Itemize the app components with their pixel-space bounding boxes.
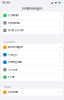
button[interactable]: Hintergrund [1, 59, 63, 66]
staticText: ALLGEMEIN [4, 41, 16, 44]
staticText: Anzeige [8, 53, 17, 56]
staticText: Sprache [8, 68, 17, 71]
button[interactable]: Mitteilungen [1, 44, 63, 51]
button[interactable]: Sicherheit [1, 12, 63, 19]
staticText: SYSTEM [4, 86, 11, 89]
staticText: Nicht Stören [8, 29, 23, 32]
staticText: Einstellungen [21, 7, 42, 10]
staticText: Hintergrund [8, 61, 22, 64]
button[interactable]: Töne [1, 74, 63, 81]
button[interactable]: Nicht Stören [1, 27, 63, 34]
staticText: Töne [8, 76, 14, 79]
staticText: Mitteilungen [8, 46, 22, 49]
staticText: Sicherheit [8, 14, 19, 17]
button[interactable]: Anzeige [1, 51, 63, 58]
button[interactable]: Datenschutz [1, 19, 63, 26]
staticText: 10:09 [2, 1, 10, 4]
staticText: Speicher [8, 91, 18, 94]
staticText: Datenschutz [8, 21, 20, 24]
button[interactable]: Speicher [1, 89, 63, 96]
button[interactable]: Sprache [1, 66, 63, 73]
